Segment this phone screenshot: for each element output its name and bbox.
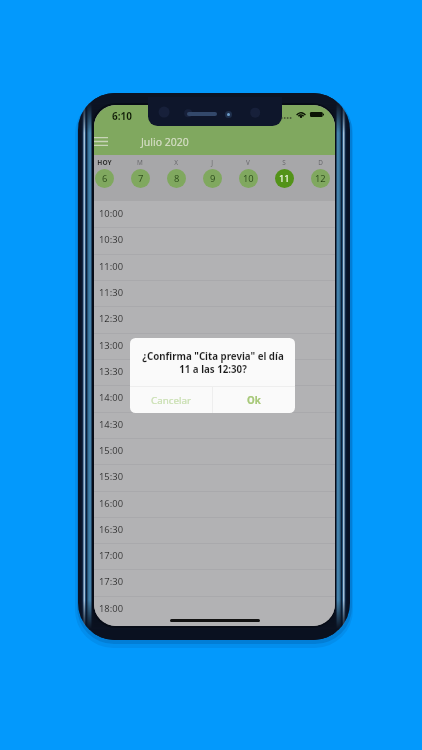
button[interactable]: 15:30 <box>94 464 335 490</box>
staticText: 11 <box>279 172 290 185</box>
button[interactable]: Ok <box>213 387 295 413</box>
staticText: 17:30 <box>99 575 124 588</box>
staticText: 11:30 <box>99 286 124 299</box>
staticText: D <box>318 158 323 167</box>
button[interactable]: 13:30 <box>94 359 335 385</box>
staticText: 8 <box>174 172 180 185</box>
staticText: 13:30 <box>99 365 124 378</box>
staticText: 17:00 <box>99 549 124 562</box>
button[interactable] <box>231 155 265 201</box>
staticText: 14:00 <box>99 391 124 404</box>
button[interactable] <box>303 155 335 201</box>
staticText: HOY <box>97 158 112 167</box>
staticText: 14:30 <box>99 418 124 431</box>
button[interactable]: 18:00 <box>94 596 335 622</box>
staticText: Ok <box>247 394 261 407</box>
staticText: X <box>174 158 178 167</box>
button[interactable]: 15:00 <box>94 438 335 464</box>
staticText: 15:30 <box>99 470 124 483</box>
button[interactable]: Cancelar <box>130 387 212 413</box>
staticText: Julio 2020 <box>141 135 189 149</box>
staticText: 9 <box>210 172 216 185</box>
staticText: 10:30 <box>99 233 124 246</box>
button[interactable]: 11:00 <box>94 254 335 280</box>
button[interactable]: 13:00 <box>94 333 335 359</box>
staticText: ¿Confirma "Cita previa" el día 11 a las … <box>142 350 284 375</box>
button[interactable]: 17:00 <box>94 543 335 569</box>
button[interactable]: 10:30 <box>94 227 335 253</box>
staticText: 15:00 <box>99 444 124 457</box>
staticText: 13:00 <box>99 339 124 352</box>
staticText: 18:00 <box>99 602 124 615</box>
staticText: 16:00 <box>99 497 124 510</box>
button[interactable] <box>94 155 121 201</box>
button[interactable]: 14:00 <box>94 385 335 411</box>
staticText: 6:10 <box>112 109 132 123</box>
staticText: 12 <box>315 172 326 185</box>
button[interactable]: Menu <box>94 130 118 154</box>
button[interactable] <box>159 155 193 201</box>
button[interactable] <box>123 155 157 201</box>
staticText: 10:00 <box>99 207 124 220</box>
staticText: 6 <box>102 172 108 185</box>
staticText: 10 <box>243 172 254 185</box>
staticText: V <box>246 158 250 167</box>
staticText: Cancelar <box>151 394 192 407</box>
staticText: 11:00 <box>99 260 124 273</box>
button[interactable]: 16:30 <box>94 517 335 543</box>
staticText: S <box>282 158 286 167</box>
staticText: M <box>137 158 143 167</box>
staticText: 16:30 <box>99 523 124 536</box>
staticText: 12:30 <box>99 312 124 325</box>
staticText: J <box>211 158 213 167</box>
button[interactable] <box>195 155 229 201</box>
button[interactable]: 10:00 <box>94 201 335 227</box>
button[interactable]: 11:30 <box>94 280 335 306</box>
button[interactable] <box>267 155 301 201</box>
staticText: 7 <box>138 172 144 185</box>
button[interactable]: 16:00 <box>94 491 335 517</box>
button[interactable]: 12:30 <box>94 306 335 332</box>
button[interactable]: 17:30 <box>94 569 335 595</box>
button[interactable]: 14:30 <box>94 412 335 438</box>
